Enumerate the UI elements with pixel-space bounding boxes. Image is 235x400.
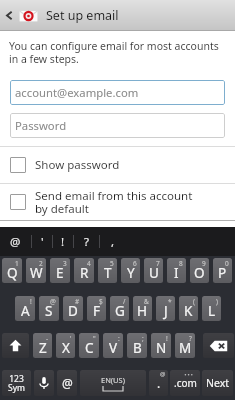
button[interactable]: W bbox=[26, 258, 46, 283]
button[interactable]: Z bbox=[33, 333, 52, 358]
staticText: 8 bbox=[179, 259, 183, 268]
button[interactable]: I bbox=[167, 258, 186, 283]
staticText: Send email from this account by default bbox=[35, 188, 205, 217]
button[interactable]: account@example.com bbox=[10, 80, 225, 105]
button[interactable]: B bbox=[127, 333, 147, 358]
button[interactable]: T bbox=[98, 258, 117, 283]
staticText: : bbox=[118, 334, 120, 343]
staticText: Password bbox=[15, 118, 67, 133]
button[interactable]: .com bbox=[170, 370, 200, 396]
staticText: ; bbox=[142, 334, 144, 343]
button[interactable]: 123 Sym bbox=[2, 370, 31, 396]
button[interactable]: Y bbox=[121, 258, 140, 283]
button[interactable]: @ bbox=[57, 370, 77, 396]
staticText: Show password bbox=[35, 157, 120, 173]
staticText: ' bbox=[70, 334, 72, 343]
button[interactable]: S bbox=[39, 296, 59, 321]
button[interactable]: E bbox=[50, 258, 70, 283]
staticText: R bbox=[80, 264, 89, 282]
button[interactable]: G bbox=[110, 296, 129, 321]
button[interactable]: L bbox=[202, 296, 221, 321]
button[interactable]: K bbox=[179, 296, 198, 321]
button[interactable]: O bbox=[190, 258, 209, 283]
button[interactable]: N bbox=[151, 333, 171, 358]
staticText: @ bbox=[10, 234, 21, 250]
button[interactable]: U bbox=[144, 258, 163, 283]
other: Voice input bbox=[37, 376, 51, 390]
button[interactable]: C bbox=[79, 333, 99, 358]
button[interactable]: ! bbox=[53, 227, 73, 256]
button[interactable]: V bbox=[103, 333, 123, 358]
staticText: F bbox=[93, 302, 101, 320]
staticText: , bbox=[111, 234, 115, 250]
button[interactable]: Shift bbox=[2, 333, 29, 358]
button[interactable]: @ bbox=[0, 227, 31, 256]
button[interactable]: Password bbox=[10, 113, 225, 138]
staticText: P bbox=[218, 264, 227, 282]
staticText: - bbox=[46, 334, 49, 343]
staticText: 0 bbox=[225, 259, 229, 268]
staticText: ! bbox=[30, 297, 32, 306]
staticText: M bbox=[179, 339, 192, 357]
staticText: Q bbox=[7, 264, 18, 282]
staticText: ? bbox=[189, 334, 192, 343]
button[interactable]: , bbox=[100, 227, 125, 256]
staticText: 3 bbox=[63, 259, 67, 268]
staticText: You can configure email for most account… bbox=[9, 39, 223, 66]
staticText: L bbox=[208, 302, 216, 320]
button[interactable]: A bbox=[15, 296, 35, 321]
staticText: 9 bbox=[202, 259, 206, 268]
staticText: H bbox=[137, 302, 148, 320]
button[interactable]: Q bbox=[2, 258, 22, 283]
staticText: @ bbox=[62, 375, 73, 391]
staticText: .com bbox=[174, 376, 197, 390]
staticText: @ bbox=[50, 297, 56, 306]
staticText: V bbox=[109, 339, 118, 357]
button[interactable]: @ bbox=[149, 370, 168, 396]
button[interactable]: H bbox=[133, 296, 152, 321]
button[interactable]: Back bbox=[0, 0, 19, 31]
button[interactable]: M bbox=[175, 333, 195, 358]
staticText: ) bbox=[216, 297, 218, 306]
staticText: Set up email bbox=[46, 7, 119, 24]
staticText: ? bbox=[84, 234, 89, 250]
button[interactable]: F bbox=[87, 296, 106, 321]
button[interactable]: ? bbox=[74, 227, 99, 256]
staticText: 7 bbox=[156, 259, 160, 268]
staticText: X bbox=[62, 339, 70, 357]
staticText: Y bbox=[127, 264, 135, 282]
staticText: T bbox=[104, 264, 112, 282]
staticText: $ bbox=[99, 297, 103, 306]
staticText: W bbox=[30, 264, 43, 282]
button[interactable]: P bbox=[213, 258, 232, 283]
button[interactable]: J bbox=[156, 296, 175, 321]
staticText: B bbox=[133, 339, 142, 357]
staticText: O bbox=[194, 264, 205, 282]
staticText: ! bbox=[61, 234, 65, 250]
other: Backspace bbox=[209, 340, 228, 352]
button[interactable]: R bbox=[74, 258, 94, 283]
button[interactable]: X bbox=[56, 333, 75, 358]
staticText: C bbox=[85, 339, 94, 357]
staticText: # bbox=[75, 297, 80, 306]
staticText: Next bbox=[206, 376, 230, 390]
button[interactable]: Show password bbox=[0, 147, 235, 183]
button[interactable]: Voice input bbox=[34, 370, 54, 396]
staticText: " bbox=[93, 334, 96, 343]
button[interactable]: D bbox=[63, 296, 83, 321]
staticText: & bbox=[144, 297, 149, 306]
button[interactable]: EN(US) bbox=[80, 370, 146, 396]
button[interactable]: ' bbox=[32, 227, 52, 256]
staticText: / bbox=[123, 297, 126, 306]
button[interactable]: Next bbox=[202, 370, 233, 396]
staticText: . bbox=[157, 375, 161, 391]
other: Shift bbox=[9, 339, 22, 352]
staticText: 1 bbox=[15, 259, 19, 268]
staticText: 5 bbox=[110, 259, 114, 268]
staticText: 4 bbox=[87, 259, 91, 268]
staticText: 123 Sym bbox=[8, 373, 25, 394]
staticText: ( bbox=[193, 297, 195, 306]
staticText: K bbox=[184, 302, 193, 320]
button[interactable]: Send email from this account by default bbox=[0, 184, 235, 220]
button[interactable]: Backspace bbox=[203, 333, 234, 358]
